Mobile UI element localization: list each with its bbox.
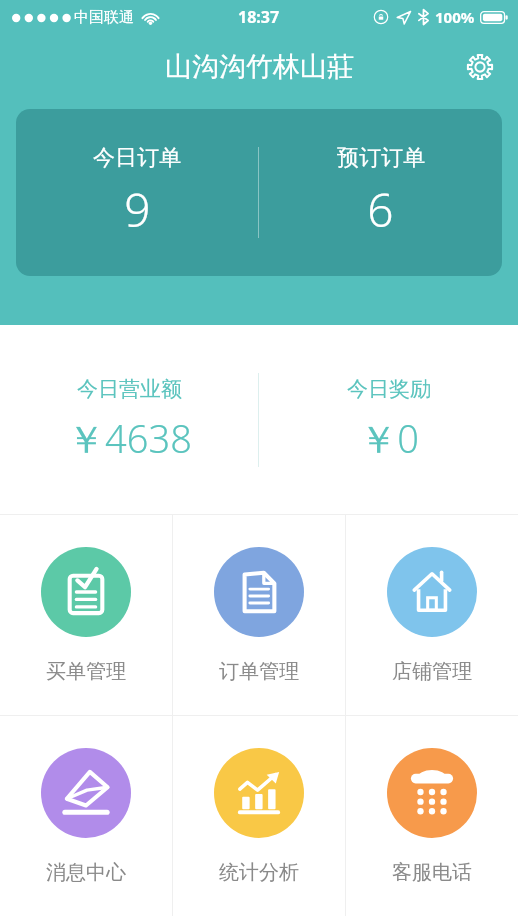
- staticText: 客服电话: [392, 860, 472, 885]
- button[interactable]: 店铺管理: [346, 515, 518, 715]
- staticText: ￥4638: [67, 412, 192, 464]
- staticText: 18:37: [238, 6, 280, 28]
- staticText: 预订订单: [337, 144, 425, 172]
- staticText: 今日营业额: [77, 376, 182, 402]
- button[interactable]: 今日订单: [16, 109, 502, 276]
- staticText: 100%: [435, 7, 475, 27]
- button[interactable]: 今日营业额: [0, 325, 258, 515]
- staticText: 买单管理: [46, 659, 126, 684]
- staticText: 6: [367, 178, 394, 241]
- staticText: 消息中心: [46, 860, 126, 885]
- staticText: 今日奖励: [347, 376, 431, 402]
- button[interactable]: Settings: [456, 43, 504, 91]
- staticText: 中国联通: [74, 8, 134, 27]
- button[interactable]: 买单管理: [0, 515, 172, 715]
- staticText: 今日订单: [93, 144, 181, 172]
- button[interactable]: 统计分析: [173, 716, 345, 916]
- button[interactable]: 客服电话: [346, 716, 518, 916]
- button[interactable]: 订单管理: [173, 515, 345, 715]
- staticText: 订单管理: [219, 659, 299, 684]
- button[interactable]: 消息中心: [0, 716, 172, 916]
- staticText: 店铺管理: [392, 659, 472, 684]
- staticText: 9: [124, 178, 151, 241]
- button[interactable]: 今日奖励: [259, 325, 518, 515]
- staticText: ￥0: [359, 412, 419, 464]
- staticText: 统计分析: [219, 860, 299, 885]
- staticText: 山沟沟竹林山莊: [165, 50, 354, 84]
